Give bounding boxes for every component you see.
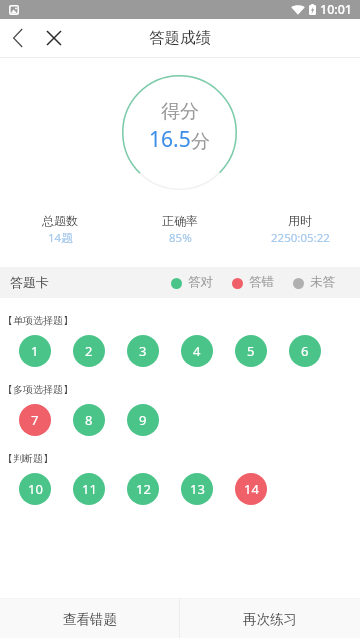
staticText: 10:01 [320,1,353,18]
button[interactable]: 6 [289,335,321,367]
button[interactable]: 14 [235,473,267,505]
staticText: 3 [139,342,147,360]
button[interactable]: 7 [19,404,51,436]
button[interactable]: 12 [127,473,159,505]
button[interactable]: 9 [127,404,159,436]
staticText: 【判断题】 [3,452,53,465]
staticText: 答对 [188,274,213,290]
staticText: 总题数 [42,213,78,228]
staticText: 7 [31,411,39,429]
staticText: 分 [191,130,210,154]
button[interactable]: 10 [19,473,51,505]
staticText: 查看错题 [63,611,117,628]
staticText: 12 [136,480,151,498]
staticText: 2250:05:22 [271,230,330,246]
button[interactable]: 11 [73,473,105,505]
staticText: 用时 [288,213,312,228]
staticText: 13 [190,480,205,498]
staticText: 答题卡 [10,274,49,290]
button[interactable]: 2 [73,335,105,367]
staticText: 再次练习 [243,611,297,628]
staticText: 14题 [48,230,73,246]
staticText: 答错 [249,274,274,290]
button[interactable]: Close [35,19,72,57]
staticText: 1 [31,342,39,360]
staticText: 【单项选择题】 [3,314,73,327]
button[interactable]: 5 [235,335,267,367]
button[interactable]: 再次练习 [180,599,360,638]
staticText: 未答 [310,274,335,290]
staticText: 【多项选择题】 [3,383,73,396]
staticText: 答题成绩 [149,28,211,48]
staticText: 6 [301,342,309,360]
staticText: 16.5 [149,125,191,154]
button[interactable]: Back [0,19,35,57]
staticText: 8 [85,411,93,429]
staticText: 14 [244,480,259,498]
staticText: 得分 [161,100,199,124]
staticText: 4 [193,342,201,360]
button[interactable]: 3 [127,335,159,367]
staticText: 正确率 [162,213,198,228]
button[interactable]: 4 [181,335,213,367]
button[interactable]: 1 [19,335,51,367]
staticText: 10 [28,480,43,498]
staticText: 9 [139,411,147,429]
staticText: 2 [85,342,93,360]
button[interactable]: 13 [181,473,213,505]
staticText: 85% [169,230,192,246]
button[interactable]: 8 [73,404,105,436]
staticText: 5 [247,342,255,360]
staticText: 11 [82,480,97,498]
button[interactable]: 查看错题 [0,599,179,638]
